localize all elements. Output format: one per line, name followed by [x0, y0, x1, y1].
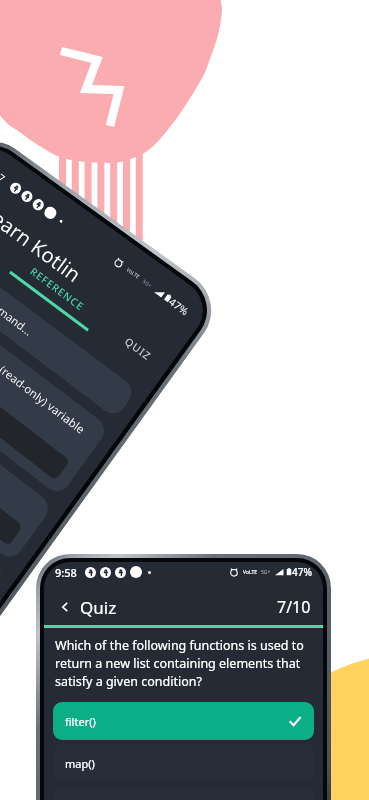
staticText: filter() — [65, 714, 96, 729]
button[interactable]: Back — [56, 598, 74, 616]
staticText: 9:57 — [0, 161, 8, 186]
button[interactable]: Declares an immutable (read-only) variab… — [0, 272, 110, 497]
button[interactable]: REFERENCE — [14, 254, 101, 324]
button[interactable]: Search for a command... — [0, 235, 137, 419]
staticText: 9:58 — [55, 565, 77, 580]
button[interactable]: map() — [53, 744, 314, 782]
staticText: 5G+ — [261, 569, 271, 576]
staticText: REFERENCE — [27, 264, 88, 314]
staticText: map() — [65, 756, 95, 771]
button[interactable]: QUIZ — [93, 312, 171, 376]
staticText: QUIZ — [122, 334, 155, 364]
staticText: Learn Kotlin — [0, 198, 87, 289]
staticText: Quiz — [80, 596, 117, 619]
staticText: Declares a mutable variable in Kotlin — [0, 362, 5, 494]
staticText: VoLTE — [125, 266, 142, 281]
staticText: Search for a command... — [0, 250, 36, 339]
staticText: 7/10 — [277, 596, 311, 618]
button[interactable]: Defines a function in Kotlin — [0, 410, 6, 628]
staticText: 47% — [292, 565, 312, 579]
button[interactable]: Declares a mutable variable in Kotlin — [0, 347, 53, 563]
button[interactable]: filter() — [53, 702, 314, 740]
staticText: Which of the following functions is used… — [55, 637, 312, 689]
staticText: 5G+ — [141, 278, 154, 290]
staticText: 47% — [166, 294, 192, 318]
staticText: Declares an immutable (read-only) variab… — [0, 287, 94, 454]
staticText: VoLTE — [243, 569, 258, 576]
